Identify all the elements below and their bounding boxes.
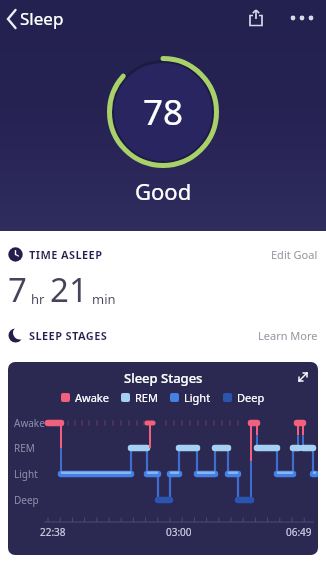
staticText: 03:00 xyxy=(166,525,192,539)
staticText: Learn More xyxy=(258,328,318,343)
button[interactable] xyxy=(288,362,318,392)
staticText: min xyxy=(92,290,116,308)
staticText: Deep xyxy=(237,390,265,405)
button[interactable]: Learn More xyxy=(258,328,318,343)
staticText: Edit Goal xyxy=(271,247,318,262)
staticText: Awake xyxy=(75,390,109,405)
staticText: Light xyxy=(184,390,211,405)
staticText: Awake xyxy=(14,416,45,430)
staticText: Sleep Stages xyxy=(124,369,203,387)
staticText: REM xyxy=(14,441,35,455)
button[interactable]: Edit Goal xyxy=(271,247,318,262)
staticText: Sleep xyxy=(20,7,64,30)
staticText: SLEEP STAGES xyxy=(29,328,108,343)
staticText: Deep xyxy=(14,493,39,507)
button[interactable]: Sleep xyxy=(0,7,64,30)
button[interactable]: Sleep Stages xyxy=(8,362,318,555)
staticText: 21 xyxy=(50,267,88,312)
button[interactable] xyxy=(285,6,321,30)
staticText: Light xyxy=(14,467,38,481)
staticText: hr xyxy=(31,290,45,308)
staticText: 78 xyxy=(143,88,184,136)
staticText: Good xyxy=(135,176,192,206)
staticText: 06:49 xyxy=(286,525,312,539)
button[interactable] xyxy=(243,5,269,31)
staticText: TIME ASLEEP xyxy=(29,247,103,262)
staticText: 22:38 xyxy=(40,525,66,539)
staticText: 7 xyxy=(8,267,27,312)
staticText: REM xyxy=(135,390,158,405)
